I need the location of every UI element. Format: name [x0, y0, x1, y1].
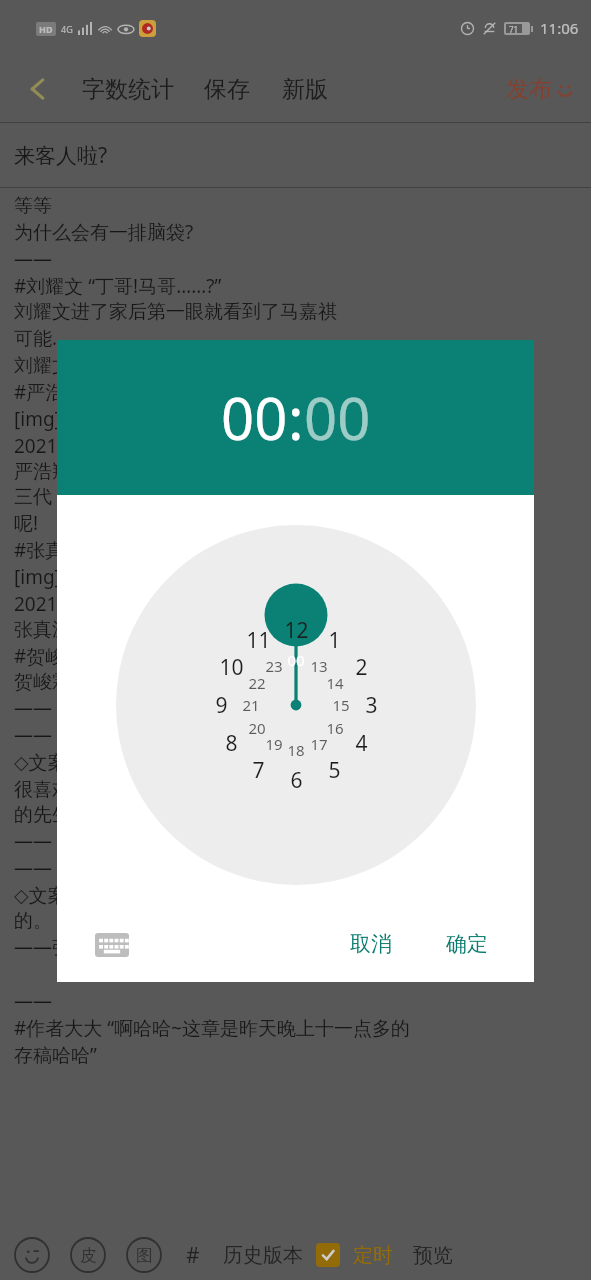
staticText: 19 [265, 734, 283, 754]
button[interactable]: 取消 [342, 927, 400, 961]
staticText: 00 [304, 378, 371, 457]
button[interactable]: 图 [126, 1237, 162, 1273]
staticText: 2021 [14, 591, 58, 617]
staticText: 等等 [14, 194, 52, 218]
staticText: 6 [290, 766, 303, 795]
staticText: #严浩翔 [14, 379, 84, 405]
staticText: 10 [219, 653, 244, 682]
staticText: 字数统计 [82, 75, 174, 104]
button[interactable]: 字数统计 [78, 75, 178, 104]
button[interactable]: 历史版本 [220, 1243, 306, 1268]
staticText: 为什么会有一排脑袋? [14, 219, 194, 245]
staticText: 12 [284, 616, 309, 645]
staticText: 22 [248, 673, 266, 693]
staticText: 确定 [446, 931, 488, 957]
staticText: 11 [246, 626, 271, 655]
staticText: 存稿哈哈” [14, 1042, 97, 1068]
staticText: 新版 [282, 75, 328, 104]
staticText: [img] [14, 406, 61, 432]
staticText: 很喜欢这样的天气,一直都是暖暖的未来 [14, 776, 343, 802]
staticText: 的先生。 [14, 803, 90, 827]
staticText: ——张极.留 [14, 934, 115, 960]
staticText: —— [14, 855, 53, 881]
button[interactable]: 00 [221, 378, 288, 457]
staticText: 20 [248, 718, 266, 738]
staticText: 3 [365, 691, 378, 720]
staticText: 7 [252, 756, 265, 785]
staticText: 取消 [350, 931, 392, 957]
staticText: 的。 [14, 909, 52, 933]
staticText: 来客人啦? [14, 141, 108, 170]
staticText: 8 [225, 729, 238, 758]
button[interactable]: 新版 [278, 75, 332, 104]
staticText: 可能…… [14, 325, 83, 351]
staticText: —— [14, 722, 53, 748]
staticText: 2021年的夏天,我们一起走过的路[] [14, 433, 304, 459]
staticText: —— [14, 246, 53, 272]
staticText: #贺峻霖 [14, 643, 84, 669]
staticText: 历史版本 [223, 1243, 303, 1268]
staticText: #张真源 [14, 537, 84, 563]
staticText: 21 [242, 695, 260, 715]
staticText: 15 [332, 695, 350, 715]
staticText: 2 [355, 653, 368, 682]
staticText: 18 [287, 740, 305, 760]
staticText: ◇文案:你是我的温带海洋性气候,还是 [14, 749, 324, 775]
button[interactable]: 00 [304, 378, 371, 457]
staticText: #作者大大 “啊哈哈~这章是昨天晚上十一点多的 [14, 1015, 410, 1041]
staticText: 14 [326, 673, 344, 693]
staticText: 刘耀文: [14, 352, 77, 378]
button[interactable]: 确定 [438, 927, 496, 961]
staticText: #刘耀文 “丁哥!马哥……?” [14, 273, 222, 299]
staticText: 图 [136, 1245, 153, 1266]
button[interactable]: 保存 [200, 75, 254, 104]
button[interactable]: Back [16, 67, 60, 111]
staticText: —— [14, 828, 53, 854]
staticText: [img] [14, 564, 61, 590]
staticText: 23 [265, 656, 283, 676]
staticText: 16 [326, 718, 344, 738]
staticText: 发布 [506, 75, 552, 104]
button[interactable]: 定时 [350, 1243, 396, 1268]
staticText: 4G [61, 23, 73, 35]
staticText: 严浩翔 [14, 460, 71, 484]
staticText: 刘耀文进了家后第一眼就看到了马嘉祺 [14, 300, 337, 324]
staticText: 贺峻霖 [14, 670, 71, 694]
staticText: 三代 [14, 485, 52, 509]
staticText: HD [39, 23, 53, 35]
staticText: 皮 [80, 1245, 97, 1266]
button[interactable]: 预览 [410, 1243, 456, 1268]
staticText: 5 [328, 756, 341, 785]
staticText: 17 [310, 734, 328, 754]
staticText: 9 [215, 691, 228, 720]
staticText: # [186, 1241, 200, 1270]
staticText: 13 [310, 656, 328, 676]
button[interactable]: Keyboard input [95, 933, 129, 957]
button[interactable]: 发布 [506, 75, 575, 104]
staticText: 呢! [14, 510, 39, 536]
staticText: 张真源 [14, 618, 71, 642]
staticText: 11:06 [540, 18, 579, 38]
staticText: 预览 [413, 1243, 453, 1268]
staticText: 保存 [204, 75, 250, 104]
staticText: —— [14, 988, 53, 1014]
staticText: 00 [287, 650, 305, 670]
staticText: 71 [509, 24, 519, 33]
staticText: —— [14, 695, 53, 721]
button[interactable]: Topic [180, 1235, 206, 1276]
staticText: ◇文案:你是我的温带海洋性气候,一直都是暖暖 [14, 882, 400, 908]
button[interactable]: Scheduled checkbox [316, 1243, 340, 1267]
button[interactable]: 皮 [70, 1237, 106, 1273]
staticText: 00 [221, 378, 288, 457]
staticText: 1 [328, 626, 341, 655]
staticText: : [288, 378, 304, 457]
staticText: 4 [355, 729, 368, 758]
button[interactable]: Emoji [14, 1237, 50, 1273]
staticText: 定时 [353, 1243, 393, 1268]
